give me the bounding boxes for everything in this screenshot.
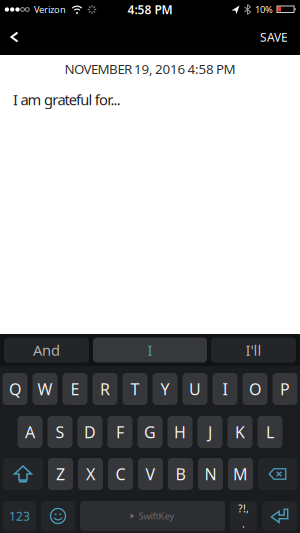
staticText: A [25, 421, 35, 443]
staticText: D [84, 421, 96, 443]
staticText: N [204, 463, 216, 485]
button[interactable]: G [137, 416, 162, 448]
staticText: I [222, 378, 227, 400]
button[interactable]: C [108, 458, 133, 490]
staticText: C [115, 463, 125, 485]
staticText: G [144, 421, 156, 443]
staticText: I am grateful for... [13, 90, 121, 109]
button[interactable]: V [138, 458, 163, 490]
staticText: K [235, 421, 245, 443]
button[interactable]: E [62, 373, 87, 405]
button[interactable]: B [168, 458, 193, 490]
staticText: Y [160, 378, 169, 400]
staticText: V [145, 463, 155, 485]
button[interactable]: I [93, 337, 207, 362]
button[interactable]: P [272, 373, 297, 405]
button[interactable]: And [4, 337, 89, 362]
button[interactable]: I [212, 373, 237, 405]
button[interactable] [41, 501, 75, 531]
staticText: 10% [255, 3, 273, 16]
button[interactable]: O [242, 373, 267, 405]
button[interactable]: M [228, 458, 253, 490]
staticText: Z [56, 463, 65, 485]
button[interactable]: 123 [3, 501, 36, 531]
button[interactable]: D [77, 416, 102, 448]
staticText: SwiftKey [138, 510, 174, 522]
staticText: Verizon [34, 3, 66, 16]
button[interactable]: SAVE [252, 19, 300, 55]
staticText: ?!, [238, 501, 249, 515]
button[interactable]: X [78, 458, 103, 490]
staticText: B [175, 463, 185, 485]
button[interactable]: A [17, 416, 42, 448]
button[interactable] [262, 501, 297, 531]
staticText: F [116, 421, 124, 443]
staticText: X [86, 463, 95, 485]
button[interactable]: K [227, 416, 252, 448]
button[interactable]: J [197, 416, 222, 448]
button[interactable] [3, 458, 43, 490]
button[interactable]: T [122, 373, 147, 405]
staticText: Q [9, 378, 21, 400]
button[interactable]: H [167, 416, 192, 448]
staticText: I'll [245, 340, 261, 360]
button[interactable]: I'll [211, 337, 296, 362]
button[interactable] [0, 19, 27, 55]
button[interactable]: Y [152, 373, 177, 405]
button[interactable]: R [92, 373, 117, 405]
button[interactable] [258, 458, 297, 490]
button[interactable]: U [182, 373, 207, 405]
staticText: U [189, 378, 201, 400]
staticText: And [33, 340, 60, 360]
staticText: M [233, 463, 248, 485]
staticText: T [130, 378, 139, 400]
staticText: S [55, 421, 64, 443]
staticText: 4:58 PM [127, 1, 172, 17]
staticText: . [242, 516, 245, 531]
button[interactable]: L [257, 416, 282, 448]
staticText: R [100, 378, 110, 400]
staticText: H [174, 421, 186, 443]
staticText: P [280, 378, 290, 400]
button[interactable]: W [32, 373, 57, 405]
staticText: E [70, 378, 79, 400]
staticText: NOVEMBER 19, 2016 4:58 PM [64, 60, 235, 78]
staticText: J [208, 421, 212, 443]
button[interactable]: ?!, [230, 501, 257, 531]
button[interactable]: N [198, 458, 223, 490]
staticText: SAVE [260, 29, 288, 45]
button[interactable]: Z [48, 458, 73, 490]
staticText: L [266, 421, 274, 443]
button[interactable]: S [47, 416, 72, 448]
button[interactable]: Q [2, 373, 27, 405]
staticText: I [147, 340, 152, 360]
staticText: 123 [9, 508, 30, 524]
staticText: O [249, 378, 261, 400]
staticText: W [37, 378, 52, 400]
button[interactable]: F [107, 416, 132, 448]
button[interactable]: SwiftKey [80, 501, 225, 531]
